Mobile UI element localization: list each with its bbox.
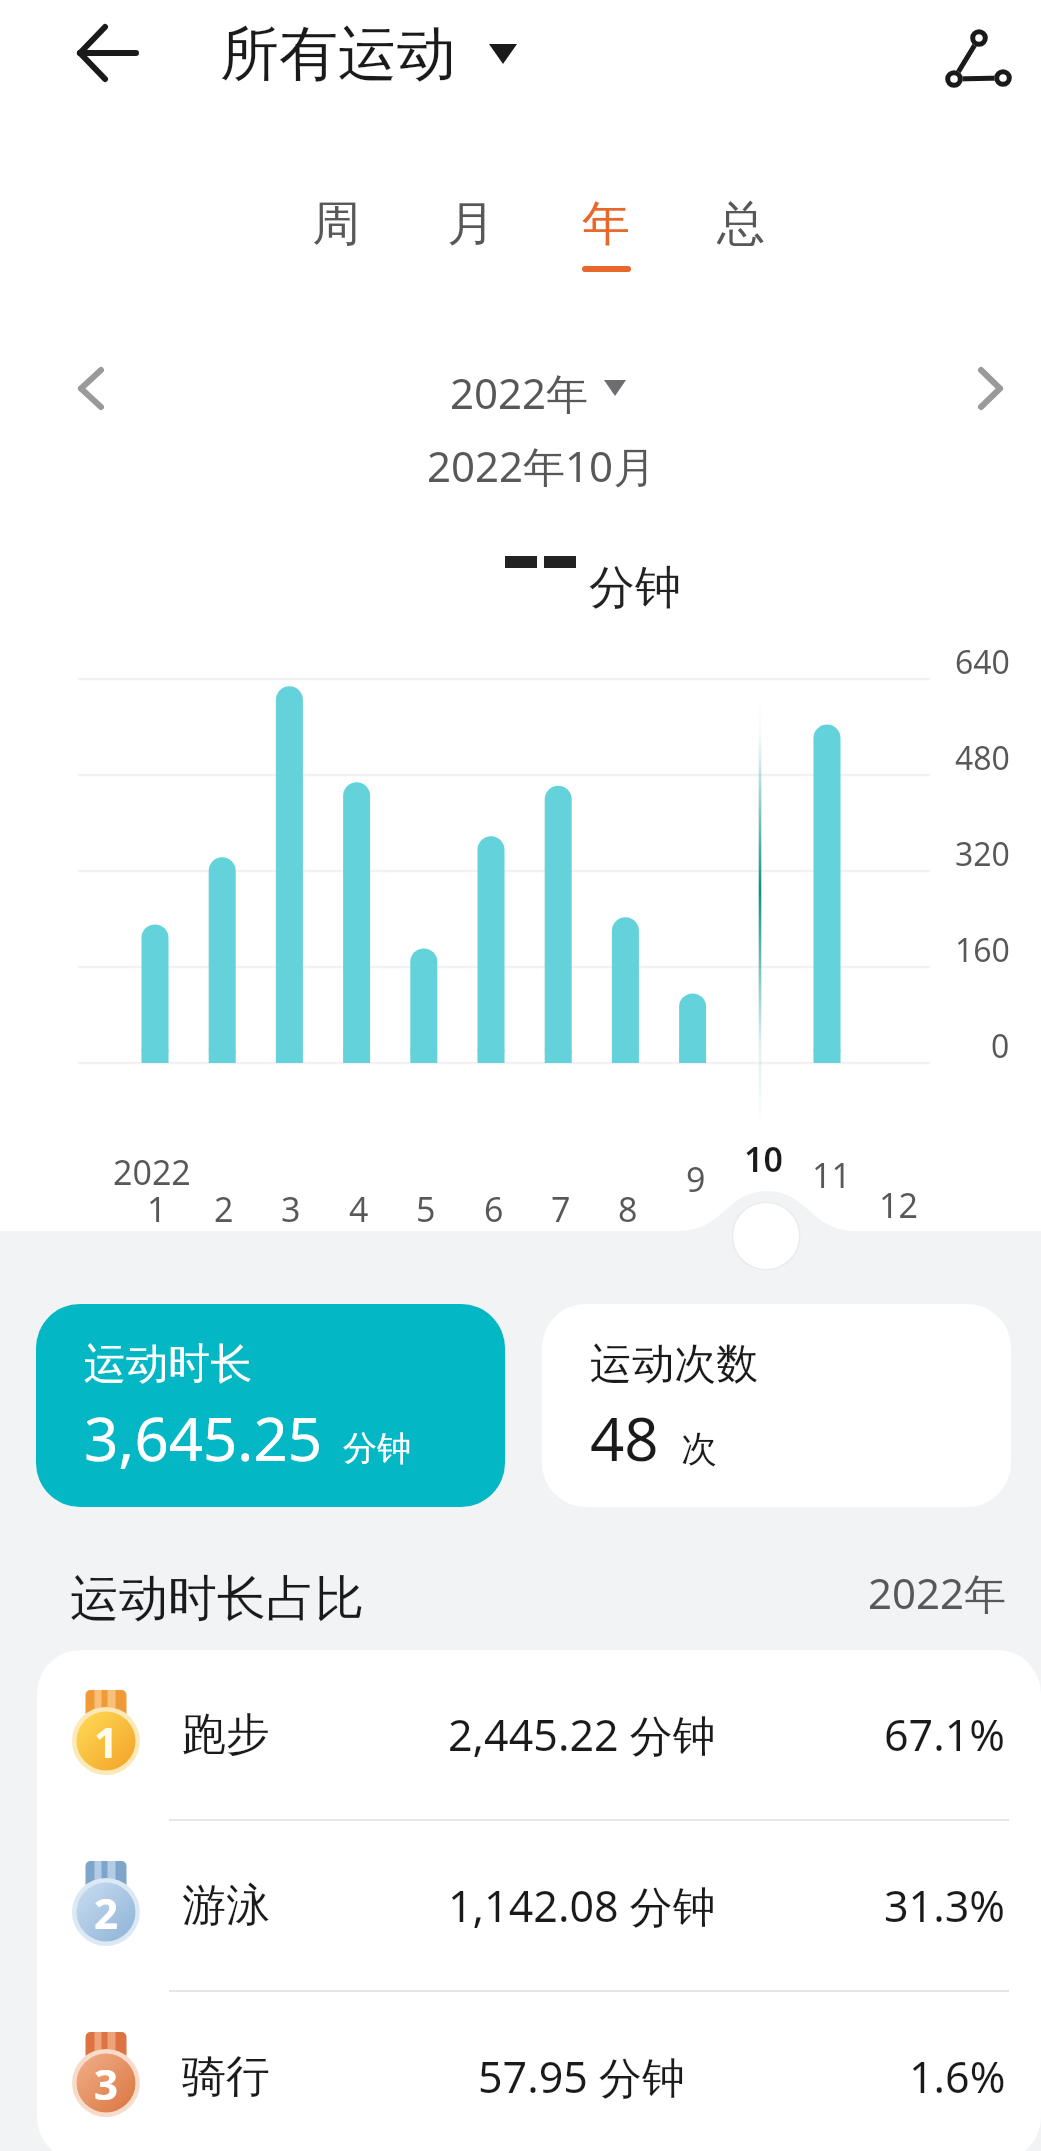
staticText: 月 [447, 194, 495, 254]
button[interactable]: 所有运动 [220, 8, 517, 100]
staticText: 年 [582, 194, 630, 254]
staticText: 5 [416, 1186, 436, 1232]
button[interactable]: 周 [281, 194, 391, 304]
staticText: 总 [717, 194, 765, 254]
staticText: 1 [147, 1186, 167, 1232]
button[interactable]: Previous year [46, 350, 136, 428]
button[interactable]: 2022年 [450, 364, 626, 421]
button[interactable]: 月 [416, 194, 526, 304]
staticText: 8 [618, 1186, 638, 1232]
staticText: 480 [955, 736, 1010, 780]
staticText: 2 [94, 1884, 119, 1941]
button[interactable]: 总 [686, 194, 796, 304]
button[interactable]: Next year [944, 350, 1034, 428]
staticText: 12 [879, 1182, 918, 1228]
button[interactable]: 运动时长 [36, 1304, 505, 1507]
staticText: 所有运动 [220, 17, 456, 91]
staticText: 4 [349, 1186, 369, 1232]
staticText: 2022年 [868, 1564, 1007, 1621]
staticText: 跑步 [182, 1707, 270, 1762]
staticText: 3 [281, 1186, 301, 1232]
staticText: 分钟 [343, 1427, 411, 1470]
staticText: 1,142.08 分钟 [448, 1876, 716, 1935]
staticText: 运动时长 [84, 1338, 252, 1391]
staticText: 9 [686, 1156, 706, 1202]
staticText: 1.6% [909, 2047, 1006, 2106]
staticText: 2022年10月 [427, 437, 656, 494]
staticText: 7 [551, 1186, 571, 1232]
staticText: 6 [484, 1186, 504, 1232]
staticText: 2 [214, 1186, 234, 1232]
staticText: 分钟 [589, 559, 681, 617]
staticText: 运动次数 [590, 1338, 758, 1391]
button[interactable]: 1 [37, 1650, 1041, 1819]
staticText: 2,445.22 分钟 [448, 1705, 716, 1764]
staticText: 320 [955, 832, 1010, 876]
staticText: 67.1% [884, 1705, 1006, 1764]
button[interactable]: 3 [37, 1992, 1041, 2151]
button[interactable]: Trend chart [926, 6, 1018, 98]
staticText: 周 [312, 194, 360, 254]
staticText: 3 [94, 2055, 119, 2112]
button[interactable]: 2 [37, 1821, 1041, 1990]
staticText: 160 [955, 928, 1010, 972]
staticText: 2022 [113, 1149, 191, 1195]
staticText: 游泳 [182, 1878, 270, 1933]
staticText: 次 [681, 1426, 717, 1471]
staticText: 57.95 分钟 [478, 2047, 686, 2106]
staticText: 48 [590, 1397, 659, 1479]
button[interactable]: 运动次数 [542, 1304, 1011, 1507]
staticText: 骑行 [182, 2049, 270, 2104]
staticText: 640 [955, 640, 1010, 684]
staticText: 2022年 [450, 364, 589, 421]
staticText: 11 [812, 1152, 851, 1198]
staticText: 1 [94, 1713, 119, 1770]
staticText: 31.3% [884, 1876, 1006, 1935]
staticText: 10 [744, 1136, 783, 1182]
button[interactable]: Back [62, 7, 154, 99]
staticText: 3,645.25 [84, 1397, 323, 1479]
staticText: 运动时长占比 [70, 1568, 364, 1630]
staticText: 0 [991, 1024, 1010, 1068]
button[interactable]: 年 [551, 194, 661, 304]
